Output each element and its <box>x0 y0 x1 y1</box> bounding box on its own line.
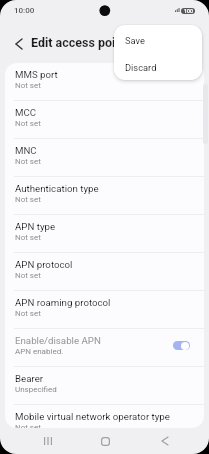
staticText: 100 <box>184 8 193 14</box>
staticText: Not set <box>15 271 41 280</box>
staticText: Save <box>125 35 145 46</box>
staticText: Discard <box>125 62 157 73</box>
staticText: 10:00 <box>14 6 35 15</box>
staticText: Not set <box>15 233 41 242</box>
staticText: MNC <box>15 145 37 156</box>
staticText: MCC <box>15 107 37 118</box>
staticText: Not set <box>15 423 41 428</box>
button[interactable]: APN roaming protocol <box>5 291 204 328</box>
button[interactable]: Save <box>114 26 202 54</box>
staticText: Edit access point <box>31 35 127 50</box>
staticText: APN type <box>15 221 56 232</box>
staticText: APN roaming protocol <box>15 297 111 308</box>
button[interactable]: MCC <box>5 101 204 138</box>
staticText: Enable/disable APN <box>15 335 101 346</box>
staticText: Not set <box>15 81 41 90</box>
button[interactable]: Discard <box>114 53 202 80</box>
button[interactable]: Enable/disable APN <box>5 329 204 366</box>
staticText: Mobile virtual network operator type <box>15 411 170 422</box>
staticText: APN enabled. <box>15 347 64 356</box>
button[interactable]: Back <box>146 429 181 453</box>
staticText: APN protocol <box>15 259 73 270</box>
staticText: Bearer <box>15 373 44 384</box>
staticText: Not set <box>15 119 41 128</box>
staticText: Authentication type <box>15 183 99 194</box>
staticText: MMS port <box>15 69 58 80</box>
staticText: Not set <box>15 157 41 166</box>
button[interactable]: MMS port <box>5 63 204 100</box>
button[interactable]: APN protocol <box>5 253 204 290</box>
button[interactable]: MNC <box>5 139 204 176</box>
staticText: Not set <box>15 309 41 318</box>
staticText: Not set <box>15 195 41 204</box>
button[interactable]: Recent apps <box>30 429 65 453</box>
staticText: Unspecified <box>15 385 57 394</box>
button[interactable]: APN type <box>5 215 204 252</box>
button[interactable]: Enable or disable APN <box>173 341 190 350</box>
button[interactable]: Bearer <box>5 367 204 404</box>
button[interactable]: Navigate up <box>6 31 32 57</box>
button[interactable]: Mobile virtual network operator type <box>5 405 204 428</box>
button[interactable]: Authentication type <box>5 177 204 214</box>
button[interactable]: Home <box>88 429 123 453</box>
